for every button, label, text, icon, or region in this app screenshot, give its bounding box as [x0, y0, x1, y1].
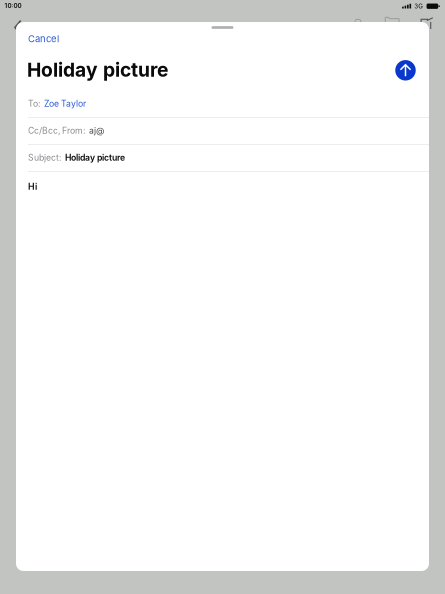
button[interactable]: Cc/Bcc, From: — [16, 118, 429, 145]
staticText: 3G — [414, 2, 423, 10]
staticText: aj@ — [89, 125, 104, 136]
button[interactable]: Cancel — [16, 29, 136, 49]
staticText: Holiday picture — [65, 152, 125, 163]
staticText: Cancel — [28, 33, 59, 45]
staticText: Subject: — [28, 152, 61, 163]
staticText: Holiday picture — [27, 58, 168, 81]
staticText: Cc/Bcc, From: — [28, 125, 85, 136]
staticText: Zoe Taylor — [44, 98, 86, 109]
staticText: 10:00 — [4, 2, 21, 9]
staticText: Hi — [28, 181, 37, 192]
button[interactable]: Subject: — [16, 145, 429, 172]
staticText: To: — [28, 98, 40, 109]
button[interactable]: To: — [16, 91, 429, 118]
button[interactable]: Send — [392, 57, 418, 83]
